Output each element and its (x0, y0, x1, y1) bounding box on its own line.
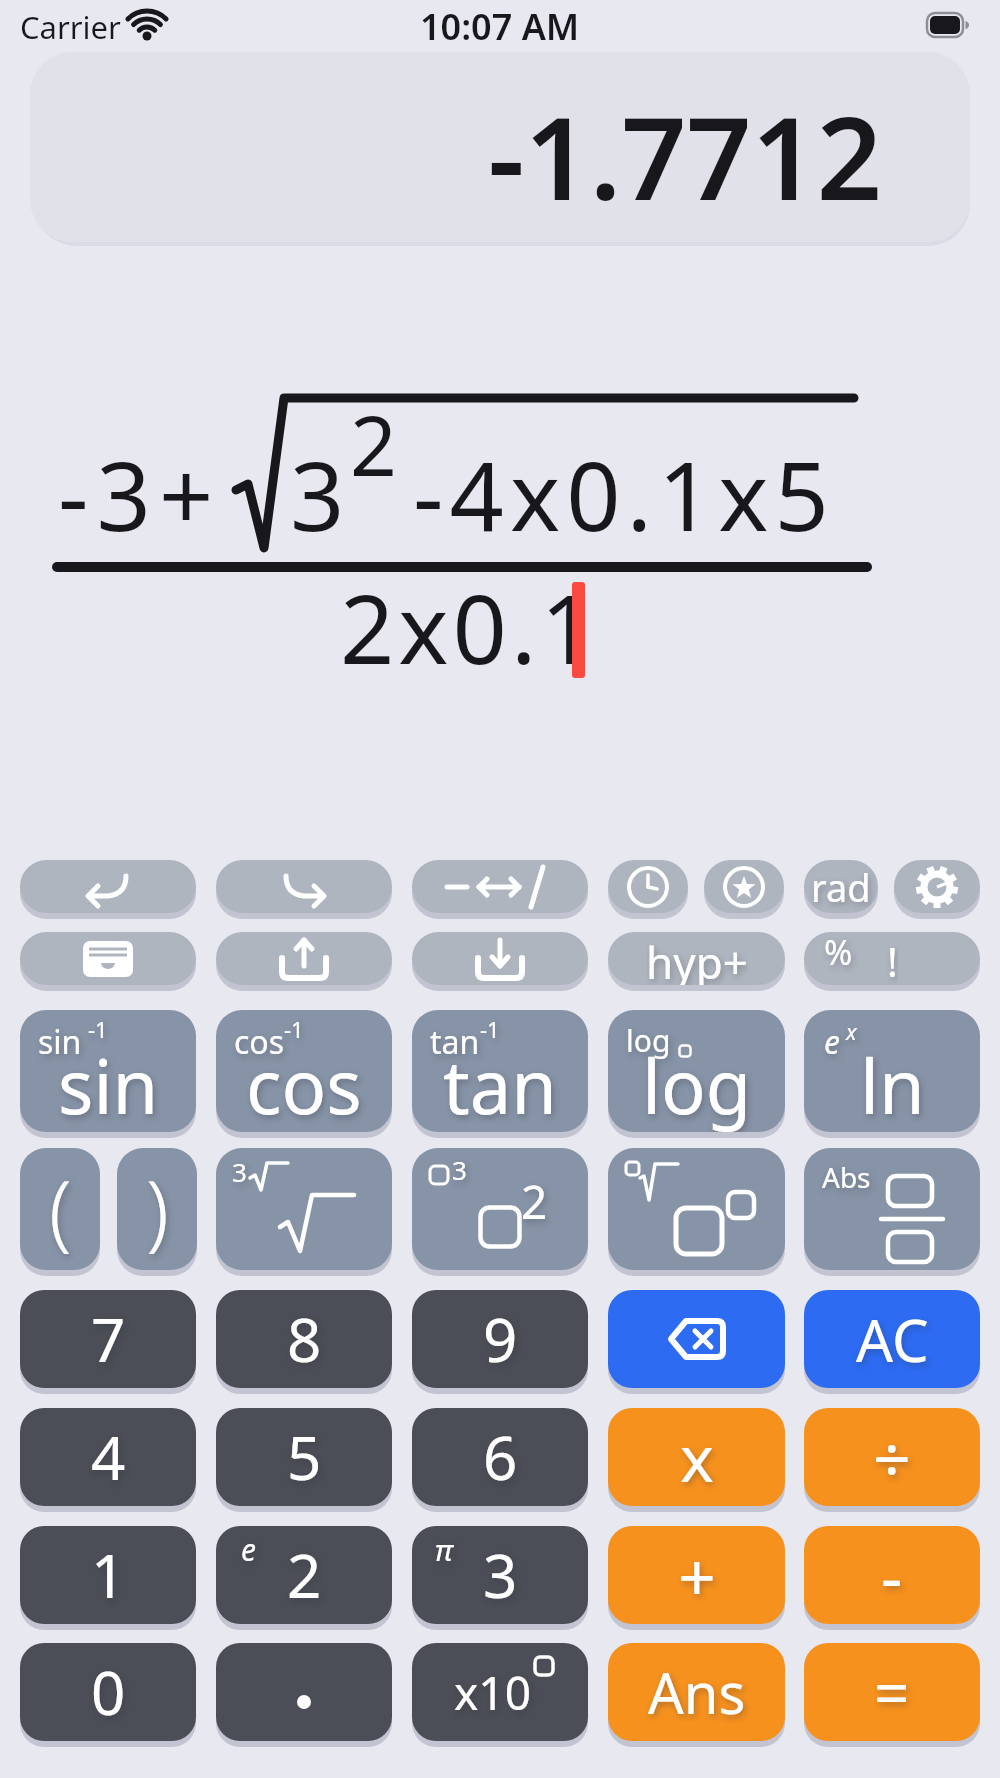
staticText: log (642, 1035, 752, 1132)
staticText: tan (430, 1020, 480, 1064)
staticText: 8 (287, 1298, 322, 1380)
staticText: AC (856, 1300, 929, 1379)
staticText: -1 (284, 1014, 304, 1044)
staticText: 3 (232, 1154, 247, 1189)
button[interactable]: 5 (216, 1408, 392, 1506)
staticText: Carrier (20, 6, 121, 48)
staticText: log (626, 1020, 671, 1061)
button[interactable] (216, 932, 392, 985)
button[interactable]: 3 (216, 1148, 392, 1270)
button[interactable]: - (804, 1526, 980, 1624)
staticText: = (874, 1650, 910, 1734)
staticText: x (846, 1016, 857, 1046)
button[interactable]: 4 (20, 1408, 196, 1506)
staticText: cos (234, 1020, 285, 1064)
button[interactable]: 0 (20, 1643, 196, 1741)
staticText: 1 (91, 1534, 126, 1616)
staticText: ) (146, 1153, 169, 1265)
button[interactable]: 8 (216, 1290, 392, 1388)
staticText: + (678, 1530, 716, 1620)
button[interactable]: 7 (20, 1290, 196, 1388)
staticText: 3 (290, 429, 345, 558)
button[interactable] (216, 1643, 392, 1741)
button[interactable]: 9 (412, 1290, 588, 1388)
staticText: 0 (91, 1651, 126, 1733)
button[interactable] (216, 860, 392, 913)
staticText: 2 (350, 388, 397, 500)
staticText: 9 (483, 1298, 518, 1380)
staticText: π (435, 1529, 453, 1570)
staticText: tan (443, 1035, 557, 1132)
staticText: ! (887, 934, 898, 985)
button[interactable]: rad (804, 860, 878, 913)
button[interactable]: 1 (20, 1526, 196, 1624)
button[interactable]: + (608, 1526, 785, 1624)
button[interactable]: % (804, 932, 980, 985)
staticText: x (680, 1414, 714, 1501)
button[interactable]: hyp+ (608, 932, 785, 985)
button[interactable]: cos (216, 1010, 392, 1132)
button[interactable]: tan (412, 1010, 588, 1132)
button[interactable]: ( (20, 1148, 100, 1270)
staticText: -1 (88, 1014, 108, 1044)
staticText: -3+ (58, 429, 222, 558)
staticText: e (824, 1020, 840, 1064)
staticText: -4x0.1x5 (413, 429, 835, 558)
button[interactable]: log (608, 1010, 785, 1132)
button[interactable]: sin (20, 1010, 196, 1132)
staticText: sin (38, 1020, 82, 1064)
button[interactable] (20, 860, 196, 913)
staticText: -1 (480, 1014, 500, 1044)
staticText: % (824, 932, 853, 975)
button[interactable]: Abs (804, 1148, 980, 1270)
staticText: 2 (287, 1534, 322, 1616)
staticText: ( (49, 1153, 72, 1265)
button[interactable] (894, 860, 980, 913)
staticText: 2 (521, 1170, 548, 1233)
staticText: hyp+ (646, 932, 748, 985)
staticText: rad (811, 861, 871, 913)
button[interactable]: e (804, 1010, 980, 1132)
button[interactable] (608, 860, 688, 913)
button[interactable]: 3 (412, 1148, 588, 1270)
staticText: Ans (648, 1654, 746, 1730)
staticText: -1.7712 (488, 78, 882, 233)
staticText: 2x0.1 (340, 562, 599, 691)
staticText: ÷ (873, 1412, 911, 1502)
staticText: 4 (91, 1416, 126, 1498)
staticText: e (241, 1529, 256, 1570)
button[interactable]: x (608, 1408, 785, 1506)
staticText: 6 (483, 1416, 518, 1498)
button[interactable]: AC (804, 1290, 980, 1388)
staticText: - (881, 1530, 903, 1620)
button[interactable]: ÷ (804, 1408, 980, 1506)
button[interactable]: = (804, 1643, 980, 1741)
button[interactable] (608, 1148, 785, 1270)
button[interactable] (412, 932, 588, 985)
button[interactable] (20, 932, 196, 985)
staticText: 3 (452, 1152, 467, 1187)
button[interactable] (412, 860, 588, 913)
button[interactable]: Ans (608, 1643, 785, 1741)
staticText: 3 (483, 1534, 518, 1616)
button[interactable] (704, 860, 784, 913)
staticText: ln (860, 1035, 925, 1132)
button[interactable]: 6 (412, 1408, 588, 1506)
staticText: 10:07 AM (420, 2, 580, 51)
staticText: 5 (287, 1416, 322, 1498)
button[interactable]: e (216, 1526, 392, 1624)
button[interactable]: ) (117, 1148, 197, 1270)
button[interactable]: π (412, 1526, 588, 1624)
staticText: sin (58, 1035, 159, 1132)
button[interactable]: x10 (412, 1643, 588, 1741)
staticText: x10 (454, 1661, 531, 1724)
staticText: cos (246, 1035, 362, 1132)
button[interactable] (608, 1290, 785, 1388)
staticText: 7 (91, 1298, 126, 1380)
staticText: Abs (822, 1158, 871, 1196)
